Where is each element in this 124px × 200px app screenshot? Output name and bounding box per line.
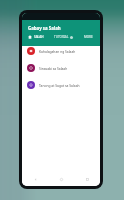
button[interactable]: SALAH	[22, 35, 49, 39]
staticText: Tanong at Sagot sa Salaah	[39, 83, 80, 87]
other: Recents	[86, 178, 89, 181]
button[interactable]: TUTORIAL	[49, 35, 77, 39]
staticText: Kahalagahan ng Salaah	[39, 49, 76, 53]
staticText: TUTORIAL	[54, 35, 69, 39]
button[interactable]: Kahalagahan ng Salaah	[22, 42, 100, 59]
staticText: SALAH	[34, 35, 44, 39]
button[interactable]: MORE	[77, 35, 100, 39]
button[interactable]: Sinasabi sa Salaah	[22, 59, 100, 76]
other: Home	[60, 178, 63, 181]
button[interactable]: Tanong at Sagot sa Salaah	[22, 76, 100, 93]
staticText: Gabay sa Salah	[28, 25, 61, 31]
other: Back	[34, 178, 37, 181]
staticText: Sinasabi sa Salaah	[39, 66, 68, 70]
staticText: MORE	[84, 35, 93, 39]
